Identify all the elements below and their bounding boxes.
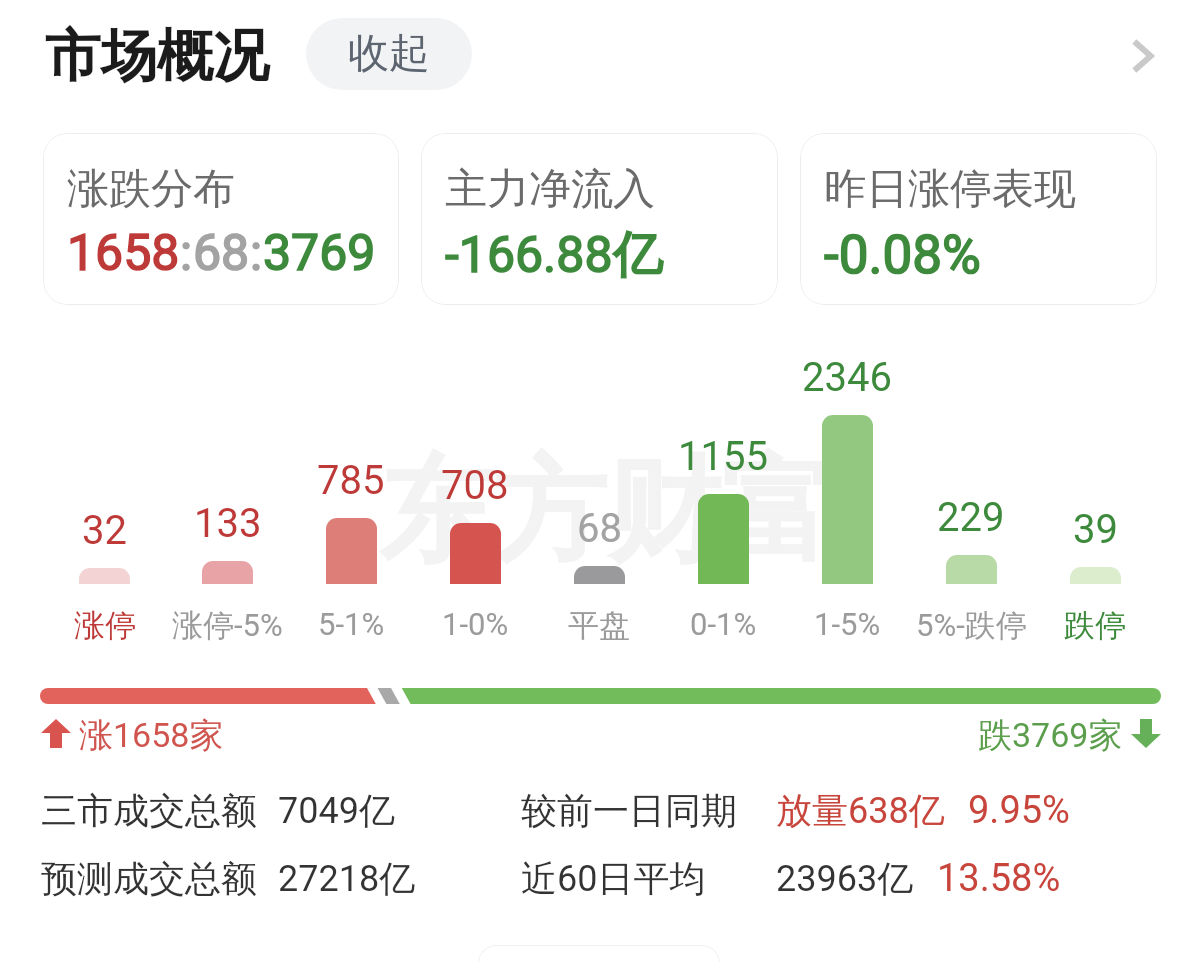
button[interactable]: 主力净流入 (421, 133, 778, 305)
staticText: 39 (1073, 506, 1118, 553)
staticText: 32 (82, 507, 127, 554)
staticText: 68 (577, 505, 622, 552)
staticText: 收起 (348, 28, 430, 80)
staticText: 东方财富 (379, 440, 835, 584)
staticText: 1658 (67, 224, 180, 283)
staticText: 13.58% (937, 856, 1061, 901)
button[interactable]: 昨日涨停表现 (800, 133, 1157, 305)
staticText: 2346 (802, 354, 892, 401)
staticText: : (250, 224, 263, 283)
staticText: 跌3769家 (978, 714, 1123, 752)
staticText: 放量638亿 (776, 788, 945, 833)
staticText: 3769 (263, 224, 376, 283)
staticText: 68 (193, 224, 250, 283)
staticText: -0.08% (824, 224, 981, 286)
staticText: 涨1658家 (79, 714, 224, 752)
button[interactable]: 跌3769家 (978, 714, 1161, 752)
staticText: 较前一日同期 (521, 788, 737, 833)
staticText: 785 (317, 457, 385, 504)
staticText: 1-5% (814, 606, 881, 642)
staticText: : (180, 224, 193, 283)
staticText: 133 (194, 500, 262, 547)
staticText: 平盘 (568, 606, 630, 645)
staticText: 1-0% (442, 606, 509, 642)
staticText: 708 (441, 462, 509, 509)
button[interactable]: 收起 (306, 18, 472, 90)
staticText: 市场概况 (45, 21, 269, 92)
staticText: 5%-跌停 (916, 606, 1027, 645)
staticText: 7049亿 (278, 788, 395, 833)
staticText: 229 (937, 494, 1005, 541)
staticText: 0-1% (690, 606, 757, 642)
button[interactable] (478, 945, 720, 962)
staticText: 23963亿 (776, 856, 914, 901)
staticText: 涨停-5% (172, 606, 283, 645)
button[interactable]: 涨1658家 (41, 714, 224, 752)
staticText: 5-1% (318, 606, 385, 642)
staticText: 预测成交总额 (41, 856, 257, 901)
button[interactable]: 涨跌分布 (43, 133, 399, 305)
staticText: 近60日平均 (521, 856, 706, 901)
staticText: 涨跌分布 (67, 163, 235, 216)
staticText: 三市成交总额 (41, 788, 257, 833)
staticText: 昨日涨停表现 (824, 163, 1076, 216)
staticText: 跌停 (1064, 606, 1126, 645)
button[interactable]: 查看更多 (1112, 26, 1172, 86)
staticText: 27218亿 (278, 856, 416, 901)
staticText: -166.88亿 (445, 224, 663, 287)
staticText: 9.95% (968, 788, 1070, 833)
staticText: 涨停 (74, 606, 136, 645)
staticText: 主力净流入 (445, 163, 655, 216)
staticText: 1155 (678, 433, 768, 480)
